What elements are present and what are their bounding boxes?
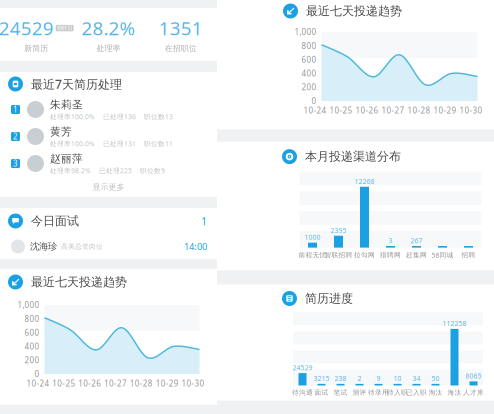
- staticText: 10-28: [407, 105, 430, 116]
- staticText: 2: [357, 374, 361, 383]
- staticText: 10-26: [78, 378, 101, 389]
- staticText: 10-24: [26, 378, 49, 389]
- button[interactable]: 3: [0, 150, 217, 177]
- staticText: 面试: [314, 388, 328, 397]
- staticText: 238: [334, 374, 346, 383]
- staticText: 1,000: [17, 300, 39, 310]
- staticText: 24529: [292, 363, 312, 372]
- staticText: 200: [24, 355, 39, 365]
- staticText: 10: [393, 374, 401, 383]
- staticText: 处理率100.0%: [50, 139, 95, 148]
- staticText: 10-25: [52, 378, 75, 389]
- staticText: 较昨日: [57, 25, 72, 31]
- staticText: 14:00: [184, 240, 207, 253]
- staticText: 待录用: [368, 388, 389, 397]
- button[interactable]: 显示更多: [0, 177, 217, 197]
- staticText: 在招职位: [165, 43, 197, 53]
- staticText: 1,000: [294, 27, 316, 37]
- staticText: 最近7天简历处理: [31, 76, 122, 92]
- staticText: 待沟通: [292, 388, 313, 397]
- staticText: 拉勾网: [354, 251, 375, 259]
- staticText: 已处理225: [99, 166, 132, 175]
- staticText: 10-30: [459, 105, 482, 116]
- staticText: 高美总管岗位: [61, 242, 103, 251]
- staticText: 3: [388, 236, 392, 245]
- staticText: 10-27: [381, 105, 404, 116]
- staticText: 3: [13, 158, 18, 169]
- staticText: 10-29: [156, 378, 179, 389]
- staticText: 简历进度: [305, 291, 353, 306]
- button[interactable]: 2: [0, 123, 217, 150]
- staticText: 最近七天投递趋势: [31, 275, 127, 289]
- staticText: 58同城: [431, 251, 453, 259]
- staticText: 600: [301, 54, 316, 65]
- staticText: 测评: [352, 388, 366, 397]
- staticText: 职位数9: [140, 166, 165, 175]
- staticText: 职位数11: [144, 139, 173, 148]
- staticText: 处理率: [96, 43, 120, 53]
- staticText: 50: [431, 374, 439, 383]
- staticText: 前程无忧: [298, 251, 326, 259]
- staticText: 黄芳: [50, 125, 72, 138]
- staticText: 34: [412, 374, 420, 383]
- staticText: 处理率100.0%: [50, 112, 95, 121]
- staticText: 10-28: [130, 378, 153, 389]
- staticText: 800: [301, 40, 316, 51]
- staticText: 800: [24, 313, 39, 324]
- staticText: 112258: [442, 319, 466, 328]
- staticText: 本月投递渠道分布: [305, 149, 401, 164]
- staticText: 显示更多: [92, 182, 124, 192]
- staticText: 24529: [0, 16, 54, 40]
- staticText: 200: [301, 82, 316, 92]
- staticText: 猎聘网: [380, 251, 401, 259]
- staticText: 1: [201, 214, 207, 228]
- staticText: 10-26: [355, 105, 378, 116]
- staticText: 400: [24, 341, 39, 352]
- staticText: 职位数13: [144, 112, 173, 121]
- staticText: 赶集网: [406, 251, 427, 259]
- staticText: 10-24: [303, 105, 326, 116]
- staticText: 2395: [330, 226, 346, 235]
- staticText: 9: [376, 374, 380, 383]
- staticText: 10-30: [181, 378, 204, 389]
- staticText: 处理率98.2%: [50, 166, 91, 175]
- staticText: 沈海珍: [30, 241, 57, 252]
- staticText: 10-25: [329, 105, 352, 116]
- button[interactable]: 沈海珍: [0, 234, 217, 259]
- staticText: 赵丽萍: [50, 152, 83, 165]
- staticText: 400: [301, 68, 316, 79]
- staticText: 12268: [354, 177, 374, 186]
- staticText: 0: [34, 369, 39, 379]
- staticText: 2: [13, 131, 18, 142]
- staticText: 今日面试: [31, 214, 79, 228]
- staticText: 新简历: [24, 43, 48, 53]
- staticText: 600: [24, 327, 39, 338]
- staticText: 1351: [159, 16, 203, 40]
- staticText: 10-27: [104, 378, 127, 389]
- staticText: 1: [13, 104, 18, 115]
- staticText: 笔试: [333, 388, 347, 397]
- staticText: 最近七天投递趋势: [306, 4, 402, 18]
- staticText: 淘汰: [428, 388, 442, 397]
- staticText: 已处理136: [103, 112, 136, 121]
- staticText: 已入职: [406, 388, 427, 397]
- staticText: 已处理131: [103, 139, 136, 148]
- staticText: 人才库: [463, 388, 484, 397]
- staticText: 0: [311, 96, 316, 106]
- button[interactable]: 1: [0, 96, 217, 123]
- staticText: 1000: [304, 233, 320, 242]
- staticText: 待入职: [387, 388, 408, 397]
- staticText: 智联招聘: [324, 251, 352, 259]
- staticText: 海汰: [447, 388, 461, 397]
- staticText: 10-29: [433, 105, 456, 116]
- staticText: 8065: [465, 372, 481, 380]
- staticText: 朱莉圣: [50, 98, 83, 111]
- staticText: 28.2%: [81, 16, 135, 40]
- staticText: 267: [410, 236, 422, 245]
- staticText: 招聘: [461, 251, 475, 259]
- staticText: 3215: [313, 374, 329, 383]
